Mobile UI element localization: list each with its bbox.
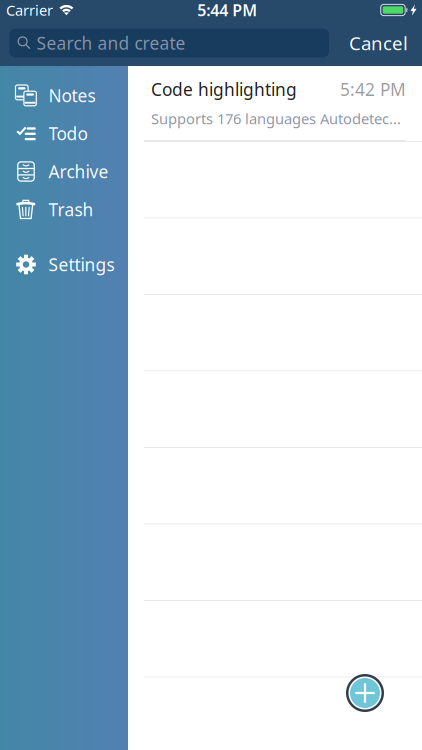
staticText: Settings — [48, 253, 114, 276]
staticText: Notes — [48, 84, 95, 107]
staticText: 5:42 PM — [340, 78, 406, 101]
staticText: Todo — [48, 122, 87, 145]
button[interactable]: Code highlighting — [128, 66, 422, 140]
button[interactable]: Archive — [0, 152, 128, 190]
staticText: Trash — [48, 198, 93, 221]
staticText: Cancel — [349, 31, 408, 55]
staticText: Archive — [48, 160, 108, 183]
button[interactable]: Trash — [0, 190, 128, 228]
staticText: Search and create — [36, 31, 185, 54]
staticText: Carrier — [6, 0, 53, 20]
staticText: Code highlighting — [151, 78, 297, 101]
staticText: Supports 176 languages Autodetec... — [151, 109, 401, 128]
button[interactable]: New note — [346, 674, 384, 712]
button[interactable]: Settings — [0, 245, 128, 283]
button[interactable]: Notes — [0, 76, 128, 114]
button[interactable]: Cancel — [329, 23, 408, 63]
button[interactable]: Todo — [0, 114, 128, 152]
staticText: 5:44 PM — [197, 0, 257, 21]
